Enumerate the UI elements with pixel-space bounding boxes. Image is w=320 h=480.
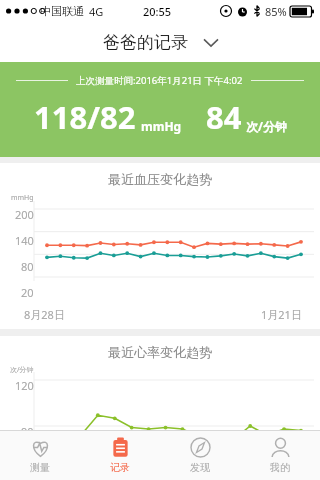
other: Switch profile: [204, 38, 218, 47]
button[interactable]: 发现: [160, 431, 240, 480]
staticText: 中国联通: [40, 4, 84, 18]
staticText: 140: [15, 233, 34, 248]
staticText: mmHg: [11, 193, 34, 203]
button[interactable]: 测量: [0, 431, 80, 480]
staticText: 90: [21, 424, 34, 436]
staticText: 120: [15, 378, 34, 393]
button[interactable]: 我的: [240, 431, 320, 480]
button[interactable]: 记录: [80, 431, 160, 480]
staticText: 发现: [190, 461, 210, 474]
staticText: 最近血压变化趋势: [0, 171, 320, 187]
staticText: 4G: [89, 4, 104, 19]
staticText: 118/82: [34, 96, 136, 138]
staticText: 200: [15, 207, 34, 222]
staticText: 最近心率变化趋势: [0, 344, 320, 360]
staticText: 1月21日: [261, 307, 302, 322]
staticText: 记录: [110, 461, 130, 474]
staticText: 20:55: [143, 4, 172, 19]
staticText: 爸爸的记录: [103, 32, 188, 53]
button[interactable]: 爸爸的记录: [91, 28, 230, 57]
staticText: 84: [206, 96, 242, 138]
staticText: 上次测量时间:2016年1月21日 下午4:02: [76, 74, 243, 87]
staticText: 85%: [265, 4, 287, 19]
button[interactable]: 最近心率变化趋势: [0, 336, 320, 436]
staticText: 80: [21, 259, 34, 274]
staticText: 20: [21, 285, 34, 300]
staticText: 次/分钟: [10, 365, 34, 375]
button[interactable]: 最近血压变化趋势: [0, 163, 320, 329]
staticText: 次/分钟: [246, 118, 287, 134]
staticText: mmHg: [141, 118, 182, 134]
staticText: 我的: [270, 461, 290, 474]
staticText: 8月28日: [24, 307, 65, 322]
staticText: 测量: [30, 461, 50, 474]
